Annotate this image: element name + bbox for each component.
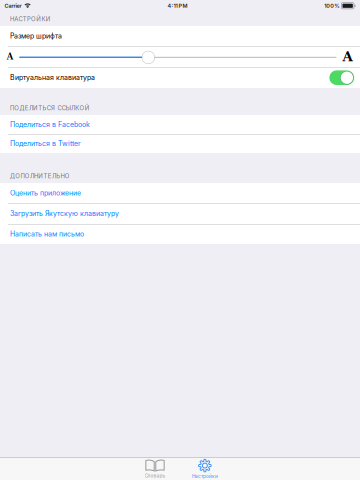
staticText: Написать нам письмо <box>10 230 84 238</box>
staticText: Поделиться в Twitter <box>10 139 81 148</box>
staticText: A <box>7 52 14 61</box>
staticText: Виртуальная клавиатура <box>10 73 95 82</box>
button[interactable]: Поделиться в Twitter <box>0 134 360 153</box>
button[interactable]: Словарь <box>130 458 180 479</box>
staticText: Словарь <box>144 473 165 478</box>
button[interactable]: Виртуальная клавиатура <box>329 70 354 85</box>
staticText: Оценить приложение <box>10 189 81 197</box>
staticText: НАСТРОЙКИ <box>10 15 50 23</box>
staticText: Размер шрифта <box>10 32 62 40</box>
staticText: ДОПОЛНИТЕЛЬНО <box>10 172 69 180</box>
staticText: Настройки <box>192 473 218 479</box>
staticText: 100% <box>324 2 339 9</box>
staticText: 4:11 PM <box>167 2 187 9</box>
button[interactable]: Настройки <box>180 458 230 479</box>
staticText: Загрузить Якутскую клавиатуру <box>10 209 119 218</box>
button[interactable]: Загрузить Якутскую клавиатуру <box>0 203 360 224</box>
staticText: ПОДЕЛИТЬСЯ ССЫЛКОЙ <box>10 104 89 112</box>
button[interactable]: Поделиться в Facebook <box>0 115 360 134</box>
staticText: A <box>342 49 352 64</box>
staticText: Carrier <box>4 2 21 9</box>
button[interactable]: Написать нам письмо <box>0 224 360 244</box>
staticText: Поделиться в Facebook <box>10 120 90 129</box>
button[interactable]: Оценить приложение <box>0 183 360 203</box>
